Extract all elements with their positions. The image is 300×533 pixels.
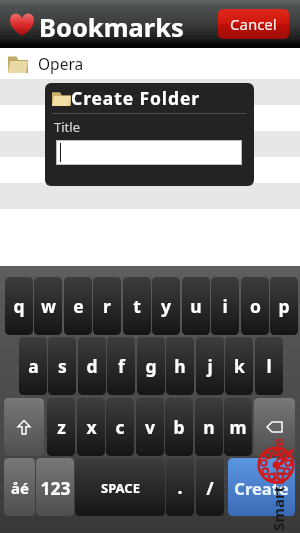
button[interactable]: t [123, 277, 151, 335]
button[interactable]: åé [4, 458, 35, 516]
button[interactable]: SPACE [75, 458, 165, 516]
button[interactable]: v [136, 398, 164, 456]
staticText: e [73, 294, 84, 318]
staticText: q [13, 294, 25, 318]
staticText: SPACE [101, 479, 140, 497]
staticText: l [266, 354, 272, 378]
staticText: Opera [38, 53, 84, 74]
button[interactable]: u [182, 277, 210, 335]
button[interactable]: e [64, 277, 92, 335]
button[interactable]: c [106, 398, 134, 456]
button[interactable]: n [195, 398, 223, 456]
staticText: / [206, 476, 214, 501]
button[interactable]: Backspace [254, 398, 295, 456]
staticText: f [118, 354, 125, 378]
staticText: c [115, 415, 125, 439]
staticText: x [86, 415, 97, 439]
staticText: Title [54, 118, 80, 136]
button[interactable]: k [225, 337, 253, 395]
staticText: Phone [268, 437, 284, 485]
button[interactable]: z [47, 398, 75, 456]
button[interactable]: y [152, 277, 180, 335]
staticText: m [229, 415, 247, 439]
button[interactable] [57, 141, 241, 164]
staticText: n [203, 415, 215, 439]
button[interactable]: m [224, 398, 252, 456]
button[interactable]: Cancel [218, 9, 289, 39]
staticText: t [133, 294, 141, 318]
staticText: Cancel [230, 14, 277, 34]
button[interactable]: o [241, 277, 269, 335]
staticText: p [278, 294, 290, 318]
button[interactable]: l [255, 337, 283, 395]
button[interactable]: g [137, 337, 165, 395]
staticText: Bookmarks [39, 10, 184, 45]
staticText: . [177, 475, 183, 500]
staticText: 123 [40, 476, 71, 500]
staticText: h [174, 354, 186, 378]
staticText: s [58, 354, 67, 378]
staticText: w [41, 294, 56, 318]
staticText: z [57, 415, 66, 439]
button[interactable]: j [196, 337, 224, 395]
staticText: a [28, 354, 39, 378]
staticText: y [161, 294, 171, 318]
button[interactable]: Opera [0, 48, 300, 79]
button[interactable]: Shift [4, 398, 44, 456]
staticText: b [173, 415, 185, 439]
button[interactable]: w [34, 277, 62, 335]
staticText: u [190, 294, 202, 318]
staticText: j [207, 354, 213, 378]
staticText: i [222, 294, 228, 318]
button[interactable]: r [93, 277, 121, 335]
button[interactable]: 123 [36, 458, 74, 516]
button[interactable]: x [77, 398, 105, 456]
staticText: k [234, 354, 245, 378]
staticText: o [250, 294, 261, 318]
button[interactable]: b [165, 398, 193, 456]
button[interactable]: / [196, 458, 224, 516]
button[interactable]: h [166, 337, 194, 395]
staticText: g [145, 354, 157, 378]
staticText: v [145, 415, 155, 439]
button[interactable]: s [48, 337, 76, 395]
button[interactable]: a [19, 337, 47, 395]
button[interactable]: q [5, 277, 33, 335]
staticText: Smart [268, 485, 284, 531]
staticText: Create [234, 477, 289, 499]
staticText: d [86, 354, 98, 378]
button[interactable]: f [107, 337, 135, 395]
staticText: åé [11, 478, 29, 498]
button[interactable]: i [211, 277, 239, 335]
button[interactable]: d [78, 337, 106, 395]
staticText: r [103, 294, 111, 318]
button[interactable]: Create [228, 458, 295, 516]
button[interactable]: p [270, 277, 298, 335]
button[interactable]: . [166, 458, 194, 516]
staticText: Create Folder [71, 86, 201, 110]
